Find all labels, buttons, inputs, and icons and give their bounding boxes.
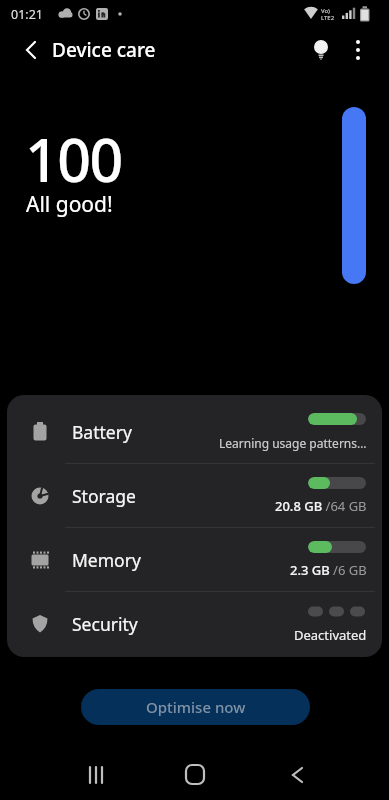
staticText: Optimise now	[146, 697, 246, 717]
staticText: Vo⁠)	[321, 7, 330, 15]
staticText: Storage	[72, 484, 136, 508]
staticText: 01:21	[11, 6, 43, 23]
staticText: Learning usage patterns…	[219, 435, 367, 451]
staticText: Memory	[72, 548, 141, 572]
button[interactable]	[266, 750, 326, 800]
button[interactable]	[66, 750, 126, 800]
button[interactable]	[7, 400, 382, 464]
button[interactable]	[305, 34, 337, 66]
staticText: 2.3 GB /6 GB	[290, 561, 367, 579]
button[interactable]	[14, 34, 46, 66]
button[interactable]	[165, 750, 225, 800]
button[interactable]	[7, 464, 382, 528]
staticText: Security	[72, 612, 138, 636]
staticText: Battery	[72, 420, 132, 444]
button[interactable]	[7, 528, 382, 592]
staticText: All good!	[26, 190, 113, 218]
staticText: Device care	[52, 37, 156, 63]
button[interactable]: Optimise now	[81, 689, 310, 725]
staticText: LTE2	[321, 14, 335, 22]
button[interactable]	[7, 592, 382, 656]
staticText: Deactivated	[294, 626, 367, 644]
staticText: 100	[25, 119, 122, 185]
button[interactable]	[344, 34, 374, 64]
staticText: 20.8 GB /64 GB	[275, 497, 367, 515]
